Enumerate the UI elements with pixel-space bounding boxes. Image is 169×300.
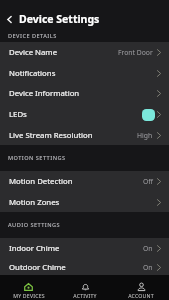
staticText: Notifications (9, 68, 56, 79)
button[interactable]: ACTIVITY (57, 275, 113, 300)
staticText: LEDs (9, 109, 27, 120)
staticText: MOTION SETTINGS (8, 154, 66, 162)
button[interactable]: Motion Zones (0, 192, 169, 212)
staticText: Front Door (118, 48, 153, 57)
button[interactable]: Device Name (0, 42, 169, 63)
staticText: High (137, 131, 153, 140)
button[interactable]: Indoor Chime (0, 238, 169, 259)
button[interactable]: Live Stream Resolution (0, 125, 169, 145)
staticText: Off (143, 177, 153, 186)
button[interactable]: Device Information (0, 83, 169, 104)
staticText: On (143, 263, 153, 272)
staticText: Motion Zones (9, 197, 60, 208)
staticText: Device Information (9, 88, 80, 99)
button[interactable]: MY DEVICES (0, 275, 57, 300)
staticText: AUDIO SETTINGS (8, 221, 61, 229)
staticText: Device Name (9, 47, 58, 58)
staticText: ACCOUNT (128, 292, 154, 299)
staticText: Motion Detection (9, 176, 73, 187)
button[interactable]: Notifications (0, 63, 169, 83)
staticText: ACTIVITY (73, 292, 97, 299)
button[interactable]: LEDs (0, 104, 169, 125)
button[interactable]: Motion Detection (0, 171, 169, 192)
button[interactable]: Back (0, 9, 19, 29)
staticText: MY DEVICES (13, 292, 45, 299)
staticText: Outdoor Chime (9, 262, 66, 273)
staticText: Indoor Chime (9, 243, 60, 254)
button[interactable]: Outdoor Chime (0, 259, 169, 275)
staticText: Live Stream Resolution (9, 130, 93, 141)
staticText: On (143, 244, 153, 253)
staticText: Device Settings (19, 12, 100, 26)
button[interactable]: ACCOUNT (113, 275, 169, 300)
staticText: DEVICE DETAILS (8, 32, 57, 40)
